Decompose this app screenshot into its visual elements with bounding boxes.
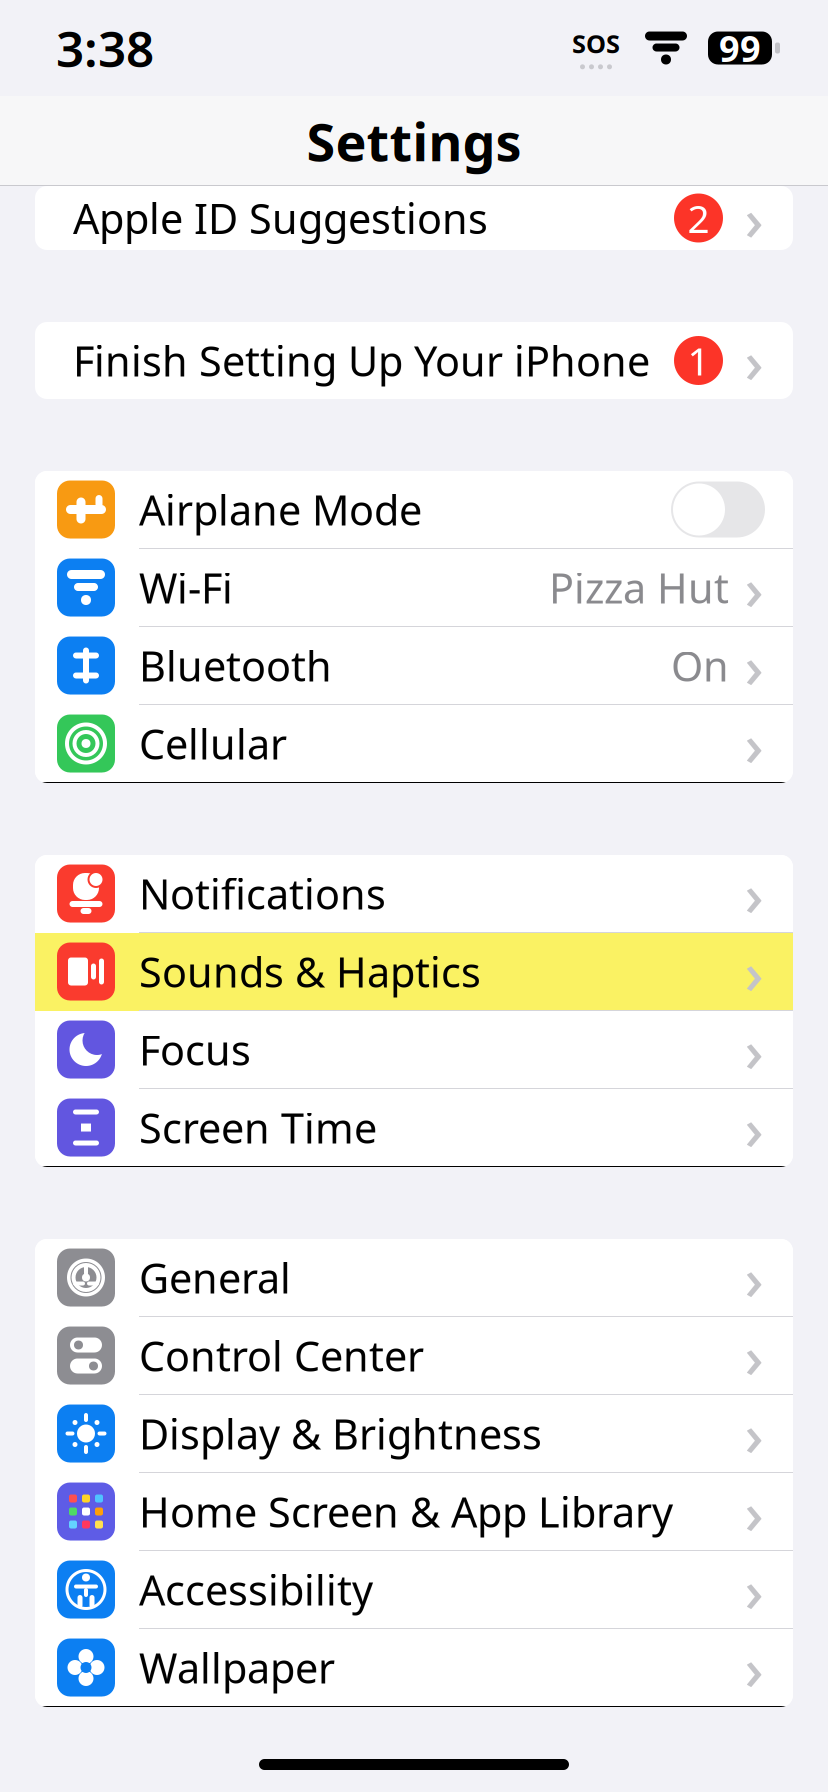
button[interactable]: Wi-Fi [35,549,793,627]
staticText: › [744,1316,763,1394]
staticText: 2 [687,192,709,244]
staticText: Notifications [139,866,386,921]
staticText: › [744,1394,763,1472]
staticText: › [744,1472,763,1550]
staticText: Airplane Mode [139,482,422,537]
button[interactable]: Screen Time [35,1089,793,1167]
staticText: › [744,704,763,782]
staticText: Display & Brightness [139,1406,542,1461]
staticText: SOS [572,27,620,60]
staticText: Wallpaper [139,1640,335,1695]
staticText: Cellular [139,716,287,771]
staticText: › [744,1628,763,1706]
button[interactable]: Apple ID Suggestions [35,186,793,250]
staticText: › [744,1238,763,1316]
button[interactable]: Finish Setting Up Your iPhone [35,322,793,399]
staticText: Control Center [139,1328,424,1383]
button[interactable]: Home Screen & App Library [35,1473,793,1551]
staticText: Bluetooth [139,638,332,693]
staticText: Screen Time [139,1100,377,1155]
staticText: Apple ID Suggestions [73,191,488,245]
staticText: Finish Setting Up Your iPhone [73,333,650,388]
staticText: › [744,321,763,399]
button[interactable]: Control Center [35,1317,793,1395]
button[interactable]: Notifications [35,855,793,933]
button[interactable]: Sounds & Haptics [35,933,793,1011]
button[interactable]: Display & Brightness [35,1395,793,1473]
staticText: › [744,1088,763,1166]
button[interactable]: Wallpaper [35,1629,793,1707]
button[interactable]: Cellular [35,705,793,783]
staticText: › [744,1550,763,1628]
staticText: Sounds & Haptics [139,944,481,999]
staticText: Settings [306,106,521,176]
button[interactable]: Airplane Mode [35,471,793,549]
staticText: › [744,854,763,932]
staticText: › [744,179,763,257]
staticText: General [139,1250,291,1305]
staticText: Focus [139,1022,251,1077]
button[interactable]: General [35,1239,793,1317]
staticText: 99 [719,24,761,72]
staticText: › [744,1010,763,1088]
staticText: Accessibility [139,1562,373,1617]
staticText: Pizza Hut [549,560,729,615]
button[interactable]: Focus [35,1011,793,1089]
staticText: 3:38 [56,15,154,81]
staticText: › [744,626,763,704]
staticText: › [744,548,763,626]
staticText: › [744,932,763,1010]
staticText: Wi-Fi [139,560,233,615]
staticText: On [671,638,729,693]
button[interactable]: Accessibility [35,1551,793,1629]
staticText: Home Screen & App Library [139,1484,673,1539]
staticText: 1 [687,335,709,386]
button[interactable]: Bluetooth [35,627,793,705]
